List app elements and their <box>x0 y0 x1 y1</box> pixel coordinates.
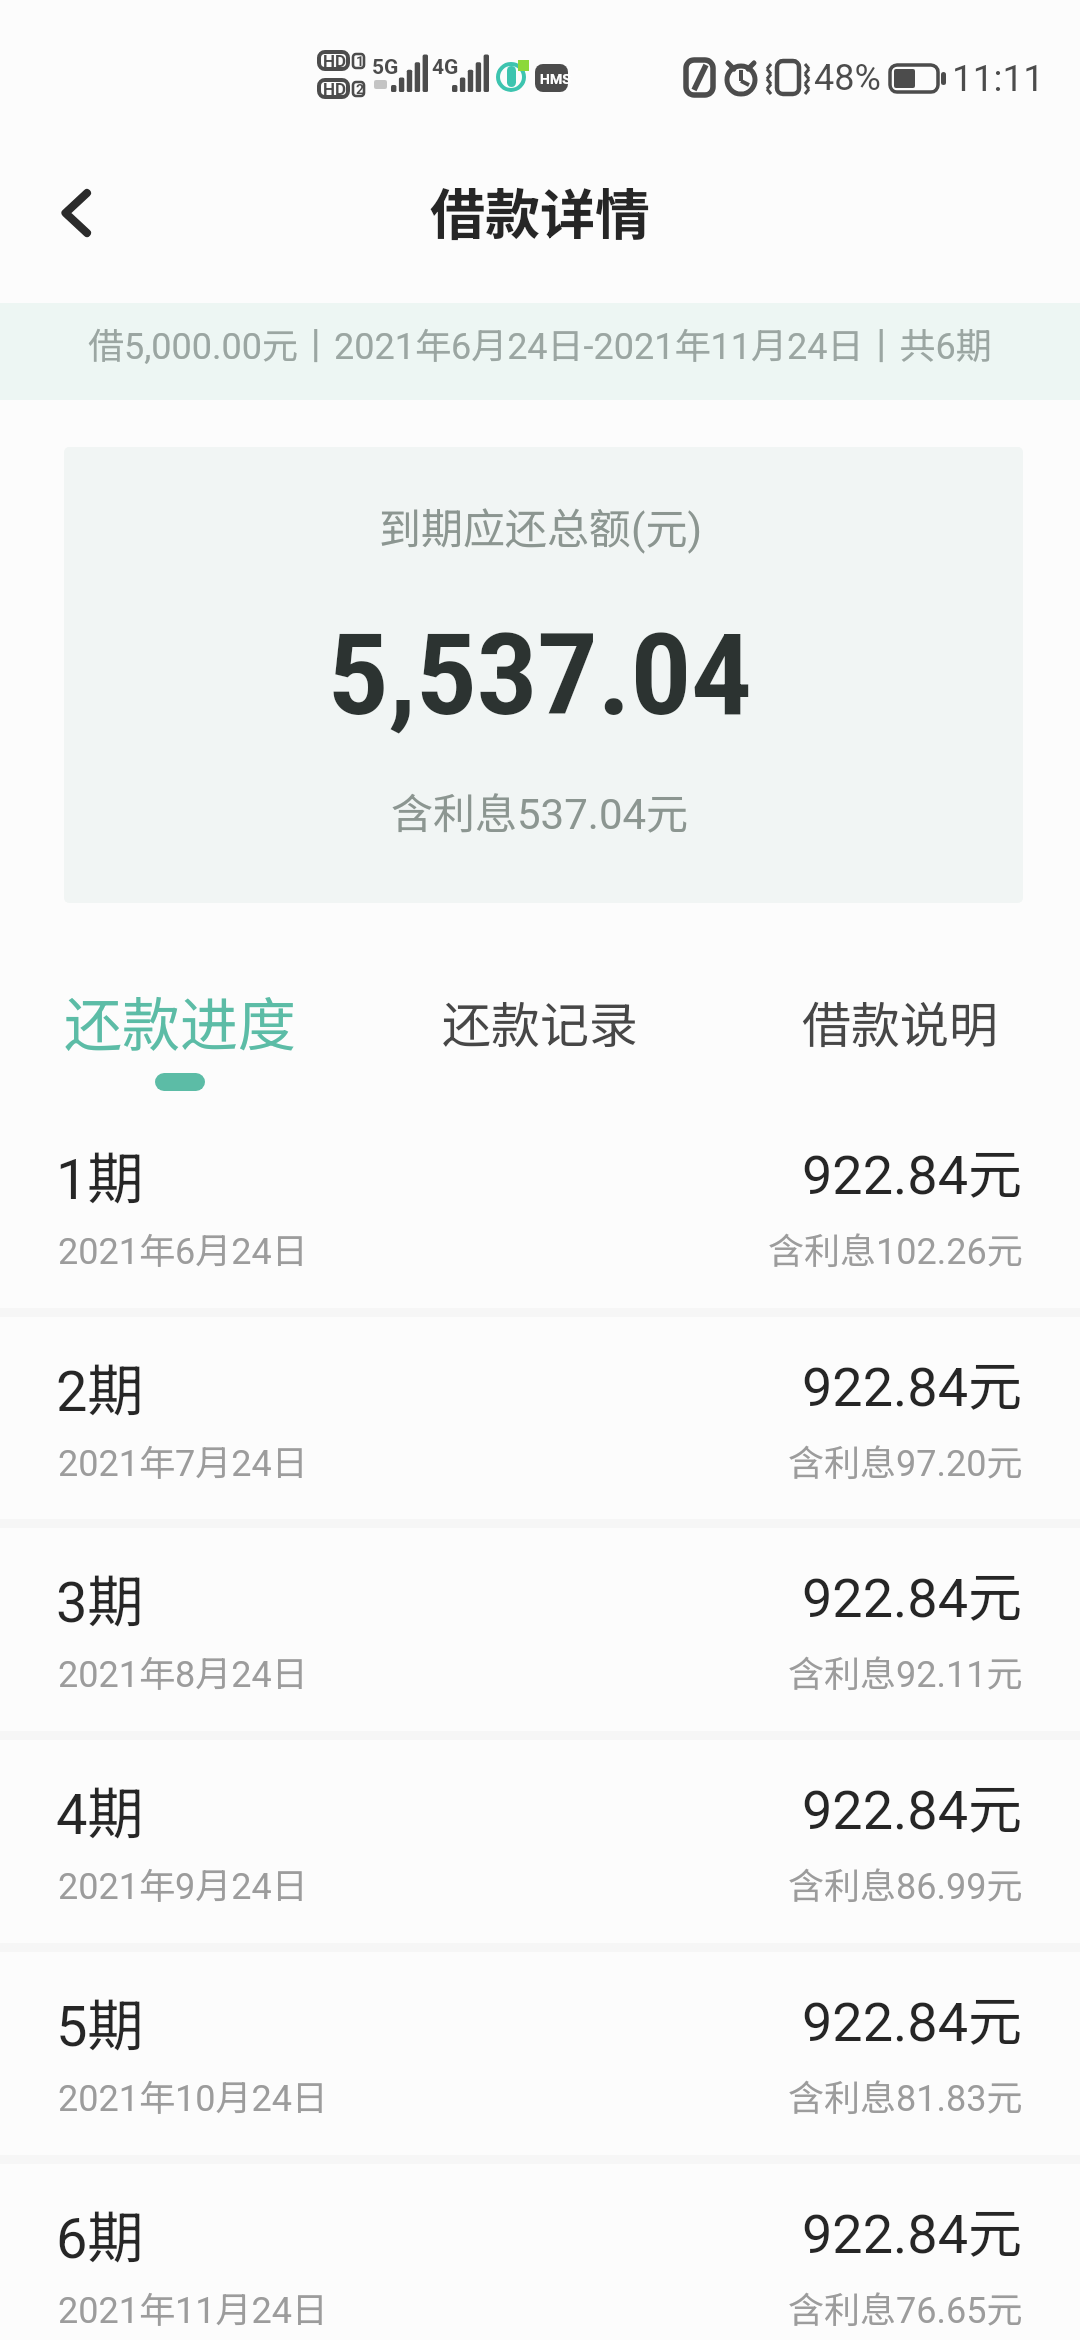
button[interactable]: 2期 <box>0 1316 1080 1528</box>
staticText: 借款详情 <box>430 171 650 251</box>
staticText: 含利息81.83元 <box>788 2069 1023 2121</box>
staticText: 2021年7月24日 <box>58 1434 308 1486</box>
staticText: 2021年11月24日 <box>58 2281 328 2333</box>
staticText: 48% <box>814 48 881 100</box>
staticText: 922.84元 <box>802 1766 1022 1844</box>
staticText: 6期 <box>56 2193 144 2274</box>
staticText: 2021年8月24日 <box>58 1645 308 1697</box>
button[interactable]: 3期 <box>0 1527 1080 1739</box>
staticText: 含利息537.04元 <box>391 780 689 841</box>
staticText: 到期应还总额(元) <box>379 495 702 556</box>
staticText: 含利息86.99元 <box>788 1857 1023 1909</box>
button[interactable]: 还款进度 <box>0 950 360 1100</box>
staticText: 2 <box>356 78 365 98</box>
staticText: 借款说明 <box>802 986 998 1057</box>
staticText: 2期 <box>56 1346 144 1427</box>
staticText: 1期 <box>56 1134 144 1215</box>
staticText: 922.84元 <box>802 1554 1022 1632</box>
staticText: 1 <box>356 50 365 70</box>
button[interactable]: 5期 <box>0 1951 1080 2163</box>
staticText: 2021年6月24日 <box>58 1222 308 1274</box>
staticText: 还款进度 <box>64 979 296 1063</box>
staticText: 借5,000.00元丨2021年6月24日-2021年11月24日丨共6期 <box>88 317 992 369</box>
staticText: 2021年10月24日 <box>58 2069 328 2121</box>
button[interactable]: 借款说明 <box>720 950 1080 1100</box>
button[interactable]: 1期 <box>0 1104 1080 1316</box>
staticText: 922.84元 <box>802 1978 1022 2056</box>
staticText: HD <box>323 47 347 72</box>
staticText: 11:11 <box>952 48 1045 102</box>
staticText: 含利息76.65元 <box>788 2281 1023 2333</box>
staticText: 含利息92.11元 <box>788 1645 1023 1697</box>
staticText: 5,537.04 <box>328 583 752 747</box>
staticText: 3期 <box>56 1557 144 1638</box>
staticText: 922.84元 <box>802 1131 1022 1209</box>
button[interactable]: 4期 <box>0 1739 1080 1951</box>
button[interactable]: Back <box>32 165 128 261</box>
staticText: HMS <box>540 68 571 88</box>
staticText: 922.84元 <box>802 2190 1022 2268</box>
staticText: 含利息102.26元 <box>768 1222 1023 1274</box>
staticText: 4期 <box>56 1769 144 1850</box>
staticText: 5G <box>372 50 399 80</box>
staticText: HD <box>323 75 347 100</box>
staticText: 5期 <box>56 1981 144 2062</box>
staticText: 2021年9月24日 <box>58 1857 308 1909</box>
staticText: 含利息97.20元 <box>788 1434 1023 1486</box>
staticText: 922.84元 <box>802 1343 1022 1421</box>
button[interactable]: 还款记录 <box>360 950 720 1100</box>
button[interactable]: 6期 <box>0 2163 1080 2340</box>
staticText: 4G <box>432 50 459 80</box>
staticText: 还款记录 <box>442 986 638 1057</box>
